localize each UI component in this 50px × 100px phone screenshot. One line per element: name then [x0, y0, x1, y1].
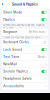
staticText: Keyboard Clicks [3, 40, 29, 44]
button[interactable]: Headphone Safety [2, 75, 48, 82]
staticText: System Haptics [3, 70, 28, 73]
button[interactable]: System Haptics [2, 68, 48, 75]
staticText: New Mail [3, 62, 17, 66]
staticText: Sound & Haptics [12, 2, 38, 6]
button[interactable]: Accessibility [2, 83, 48, 90]
staticText: Note [38, 55, 45, 59]
button[interactable]: Text Tone [2, 53, 48, 60]
staticText: Silent Mode [3, 11, 22, 14]
button[interactable]: New Mail [2, 61, 48, 68]
button[interactable]: Keyboard Clicks [2, 39, 48, 46]
staticText: Accessibility [3, 84, 24, 88]
staticText: Silence calls and notifications. Haptics… [3, 24, 44, 29]
staticText: Reflection [29, 30, 45, 34]
staticText: Lock Sound [3, 48, 22, 51]
button[interactable]: Ringtone [2, 28, 48, 35]
staticText: Headphone Safety [3, 77, 32, 80]
button[interactable]: Lock Sound [2, 46, 48, 53]
staticText: Haptics [3, 18, 15, 21]
button[interactable]: Back [0, 1, 5, 7]
button[interactable]: Silent Mode [2, 9, 48, 16]
button[interactable]: Haptics [2, 16, 48, 23]
staticText: Ringtone [3, 30, 17, 34]
staticText: Text Tone [3, 55, 19, 59]
staticText: Choose the tone that plays for calls. [3, 36, 41, 39]
